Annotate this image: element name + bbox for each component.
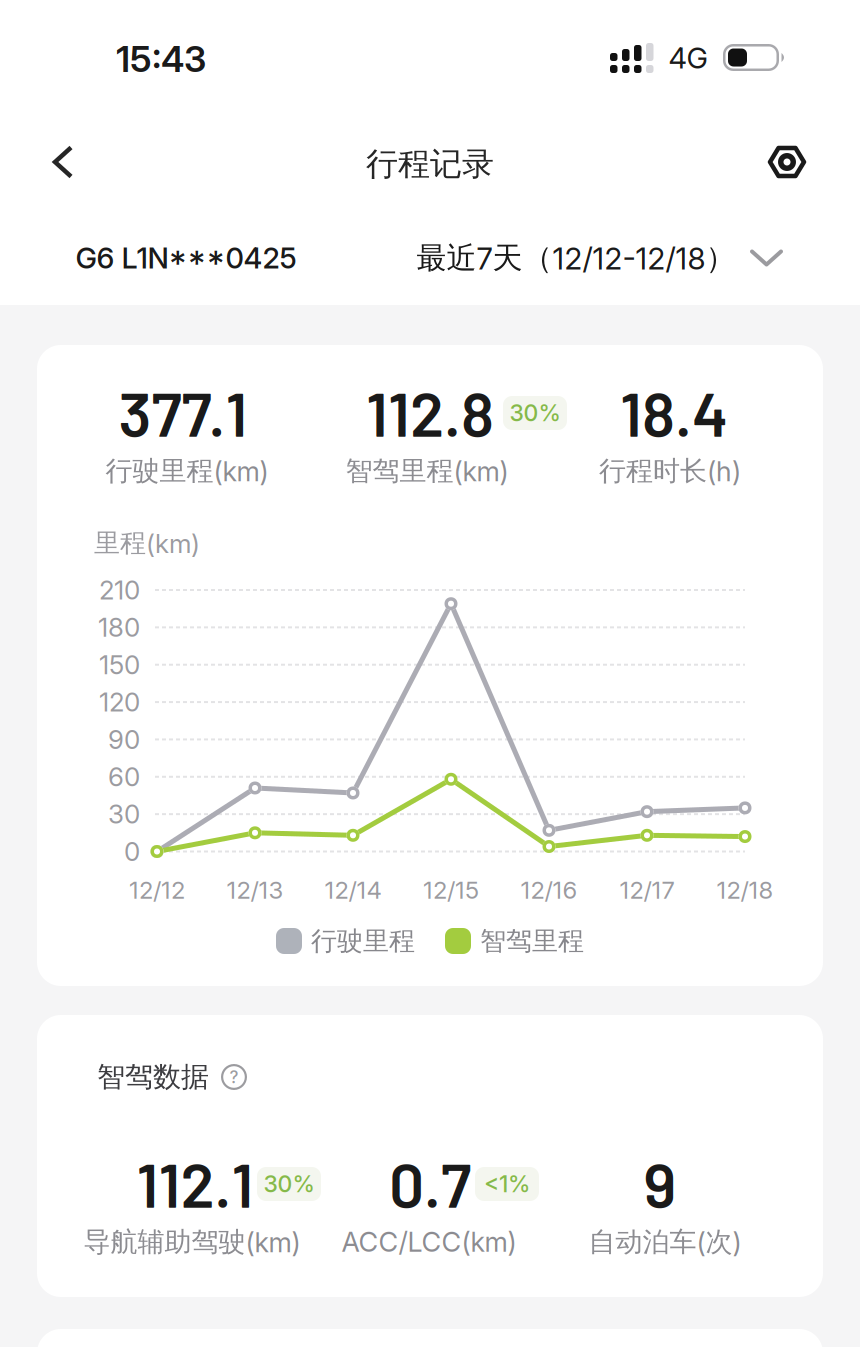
staticText: 9	[643, 1146, 676, 1220]
staticText: 30%	[263, 1170, 314, 1198]
staticText: 行驶里程	[311, 925, 415, 957]
staticText: 30%	[509, 399, 560, 427]
button[interactable]: Settings	[757, 132, 817, 192]
staticText: ACC/LCC(km)	[341, 1226, 516, 1258]
staticText: 行程记录	[366, 144, 494, 184]
button[interactable]: 智驾数据说明	[221, 1064, 247, 1090]
staticText: 112.8	[366, 375, 494, 449]
staticText: ?	[229, 1067, 238, 1087]
staticText: 112.1	[136, 1146, 253, 1220]
staticText: 最近7天（12/12-12/18）	[416, 239, 735, 277]
staticText: 0	[124, 836, 140, 867]
staticText: 60	[108, 761, 140, 793]
staticText: 180	[98, 612, 140, 643]
button[interactable]: G6 L1N***0425	[75, 240, 296, 276]
staticText: 12/15	[423, 875, 479, 904]
staticText: 智驾里程	[480, 925, 584, 957]
staticText: 15:43	[116, 37, 206, 81]
staticText: 120	[99, 686, 140, 718]
staticText: 0.7	[389, 1146, 471, 1220]
staticText: 377.1	[118, 375, 247, 449]
staticText: 行驶里程(km)	[105, 454, 268, 488]
staticText: 12/12	[129, 875, 185, 904]
staticText: 90	[108, 724, 140, 755]
staticText: 12/14	[324, 875, 381, 904]
button[interactable]: Back	[33, 132, 93, 192]
staticText: 12/13	[226, 875, 283, 904]
staticText: 210	[99, 574, 140, 606]
staticText: 行程时长(h)	[599, 454, 741, 488]
staticText: 自动泊车(次)	[588, 1225, 741, 1259]
staticText: 导航辅助驾驶(km)	[83, 1225, 300, 1259]
staticText: 12/18	[716, 875, 773, 904]
staticText: G6 L1N***0425	[75, 240, 296, 276]
staticText: 12/17	[619, 875, 674, 904]
staticText: <1%	[484, 1170, 530, 1198]
staticText: 150	[99, 649, 140, 680]
staticText: 里程(km)	[94, 527, 200, 559]
staticText: 智驾数据	[97, 1059, 209, 1095]
staticText: 12/16	[520, 875, 577, 904]
staticText: 30	[108, 798, 140, 830]
button[interactable]: 最近7天（12/12-12/18）	[416, 239, 783, 277]
staticText: 智驾里程(km)	[345, 454, 508, 488]
staticText: 18.4	[620, 375, 728, 449]
staticText: 4G	[668, 40, 707, 76]
